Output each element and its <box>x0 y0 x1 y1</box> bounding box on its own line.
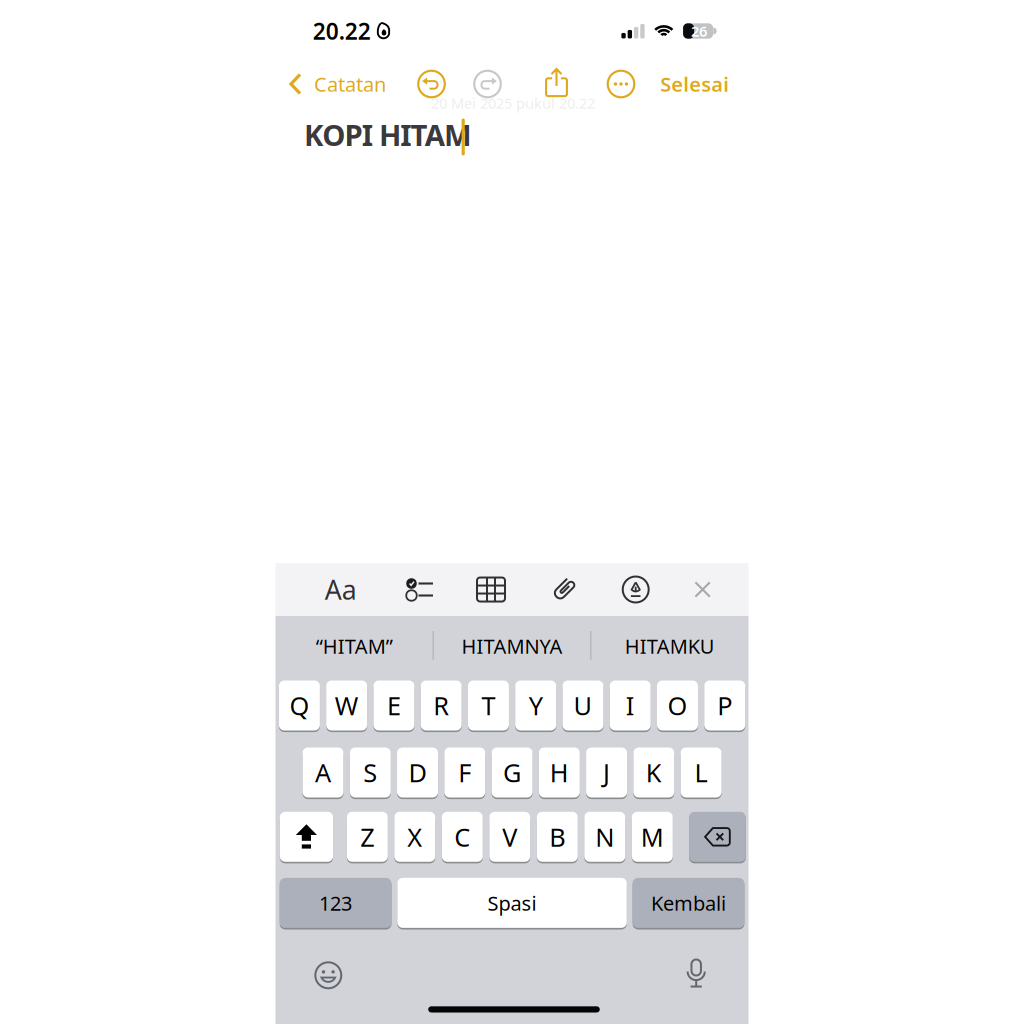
button[interactable]: E <box>373 679 414 731</box>
button[interactable]: I <box>610 679 651 731</box>
staticText: D <box>408 756 426 789</box>
button[interactable]: B <box>537 811 578 863</box>
staticText: A <box>315 756 331 789</box>
button[interactable]: Daftar periksa <box>406 577 434 601</box>
staticText: “HITAM” <box>316 633 393 659</box>
staticText: L <box>695 756 708 789</box>
staticText: F <box>458 756 471 789</box>
button[interactable]: W <box>326 679 367 731</box>
staticText: E <box>387 689 401 722</box>
staticText: W <box>335 689 359 722</box>
button[interactable]: V <box>489 811 530 863</box>
button[interactable]: Format <box>325 572 357 607</box>
staticText: K <box>646 756 662 789</box>
button[interactable]: O <box>657 679 698 731</box>
staticText: 123 <box>319 890 352 916</box>
button[interactable]: HITAMNYA <box>437 618 587 674</box>
staticText: Selesai <box>660 71 729 97</box>
staticText: Spasi <box>487 890 536 916</box>
button[interactable]: D <box>397 746 438 798</box>
button[interactable]: Selesai <box>660 71 729 97</box>
staticText: C <box>454 820 470 854</box>
staticText: J <box>603 756 610 789</box>
button[interactable]: Ulangi <box>474 70 501 97</box>
button[interactable]: C <box>442 811 483 863</box>
staticText: M <box>641 820 664 854</box>
button[interactable]: Tabel <box>476 576 506 602</box>
button[interactable]: S <box>350 746 391 798</box>
button[interactable]: Z <box>347 811 388 863</box>
staticText: G <box>503 756 521 789</box>
staticText: B <box>549 820 565 854</box>
staticText: R <box>433 689 449 722</box>
staticText: Kembali <box>651 890 726 916</box>
button[interactable]: Bagikan <box>543 67 569 97</box>
button[interactable]: Shift <box>280 811 333 863</box>
button[interactable]: R <box>421 679 462 731</box>
staticText: I <box>626 689 635 722</box>
button[interactable]: Kembali <box>633 877 744 929</box>
button[interactable]: Lainnya <box>608 71 634 97</box>
staticText: KOPI HITAM <box>304 115 472 154</box>
staticText: HITAMNYA <box>461 633 562 659</box>
button[interactable]: “HITAM” <box>279 618 429 674</box>
staticText: 20.22 <box>313 16 371 46</box>
staticText: Z <box>360 820 374 854</box>
button[interactable]: G <box>492 746 533 798</box>
button[interactable]: T <box>468 679 509 731</box>
button[interactable]: F <box>444 746 485 798</box>
button[interactable]: P <box>704 679 745 731</box>
staticText: HITAMKU <box>625 633 715 659</box>
staticText: 20 Mei 2025 pukul 20.22 <box>431 93 595 113</box>
button[interactable]: Catatan <box>289 71 386 97</box>
staticText: S <box>363 756 377 789</box>
staticText: V <box>502 820 517 854</box>
staticText: Aa <box>325 572 357 607</box>
staticText: U <box>573 689 592 722</box>
button[interactable]: J <box>586 746 627 798</box>
button[interactable]: H <box>539 746 580 798</box>
staticText: Y <box>529 689 543 722</box>
button[interactable]: M <box>632 811 673 863</box>
button[interactable]: A <box>302 746 343 798</box>
staticText: O <box>667 689 687 722</box>
button[interactable]: Emoji <box>315 962 341 988</box>
button[interactable]: Q <box>279 679 320 731</box>
button[interactable]: X <box>394 811 435 863</box>
staticText: N <box>595 820 614 854</box>
button[interactable]: Tutup <box>694 581 711 598</box>
staticText: Catatan <box>314 71 386 97</box>
button[interactable]: U <box>562 679 603 731</box>
staticText: Q <box>289 689 309 722</box>
button[interactable]: 123 <box>280 877 391 929</box>
button[interactable]: K <box>633 746 674 798</box>
button[interactable]: L <box>681 746 722 798</box>
button[interactable]: Lampiran <box>548 574 579 605</box>
button[interactable]: Hapus <box>689 811 746 863</box>
staticText: T <box>481 689 495 722</box>
button[interactable]: N <box>584 811 625 863</box>
button[interactable]: Dikte <box>685 958 707 989</box>
button[interactable]: Urungkan <box>418 70 445 97</box>
staticText: 26 <box>691 21 707 41</box>
button[interactable]: HITAMKU <box>595 618 745 674</box>
staticText: P <box>717 689 732 722</box>
staticText: X <box>407 820 422 854</box>
button[interactable]: Y <box>515 679 556 731</box>
button[interactable]: Spasi <box>397 877 627 929</box>
button[interactable]: Markah <box>623 576 649 602</box>
staticText: H <box>550 756 569 789</box>
